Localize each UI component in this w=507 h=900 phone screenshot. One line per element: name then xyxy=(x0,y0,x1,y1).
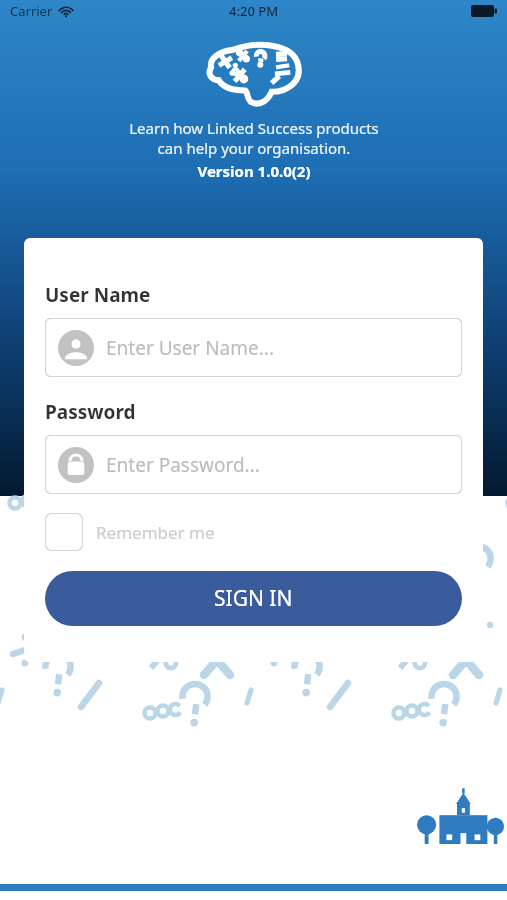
staticText: Remember me xyxy=(96,521,215,544)
button[interactable]: Enter User Name... xyxy=(45,318,462,377)
staticText: User Name xyxy=(45,282,151,308)
staticText: Learn how Linked Success products can he… xyxy=(129,118,379,158)
staticText: Enter Password... xyxy=(106,452,260,478)
staticText: Carrier xyxy=(10,2,53,20)
staticText: Enter User Name... xyxy=(106,335,275,361)
staticText: Password xyxy=(45,399,136,425)
staticText: Version 1.0.0(2) xyxy=(197,161,311,181)
button[interactable]: Remember me xyxy=(45,511,215,553)
staticText: 4:20 PM xyxy=(229,2,279,20)
staticText: SIGN IN xyxy=(214,584,293,613)
button[interactable]: SIGN IN xyxy=(45,571,462,626)
button[interactable]: Enter Password... xyxy=(45,435,462,494)
